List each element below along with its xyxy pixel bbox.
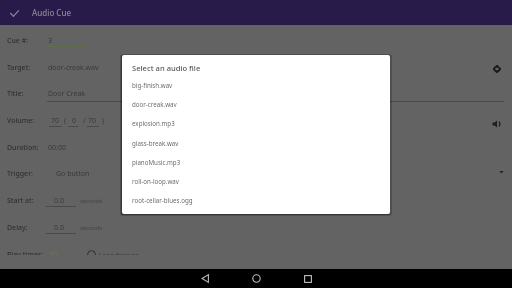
staticText: Play times: [7, 250, 44, 255]
button[interactable]: roll-on-loop.wav [122, 171, 390, 190]
staticText: roll-on-loop.wav [132, 177, 179, 185]
staticText: / [83, 116, 86, 126]
staticText: Audio Cue [32, 7, 72, 18]
staticText: big-finish.wav [132, 81, 173, 89]
staticText: Select an audio file [132, 63, 201, 73]
staticText: pianoMusic.mp3 [132, 158, 181, 166]
staticText: Start at: [7, 196, 34, 206]
staticText: Delay: [7, 223, 28, 233]
button[interactable]: Settings [488, 60, 505, 77]
staticText: Loop forever [99, 251, 138, 255]
staticText: 70 [51, 116, 60, 126]
staticText: 0 [72, 116, 77, 126]
staticText: ) [102, 116, 105, 126]
staticText: glass-break.wav [132, 139, 179, 147]
staticText: Door Creak [48, 89, 86, 99]
staticText: door-creak.wav [132, 100, 177, 108]
staticText: 0.0 [54, 196, 64, 206]
button[interactable]: Back [180, 269, 231, 288]
button[interactable]: Recents [282, 269, 333, 288]
staticText: 0.0 [54, 223, 64, 233]
staticText: Go button [56, 169, 90, 179]
staticText: Trigger: [7, 169, 33, 179]
staticText: Volume: [7, 116, 35, 126]
staticText: 3 [48, 36, 53, 46]
staticText: Title: [7, 89, 24, 99]
staticText: 00:00 [48, 143, 66, 153]
button[interactable]: glass-break.wav [122, 133, 390, 152]
button[interactable]: explosion.mp3 [122, 113, 390, 132]
staticText: seconds [80, 197, 103, 205]
staticText: Cue #: [7, 36, 29, 46]
staticText: Target: [7, 63, 31, 73]
button[interactable]: big-finish.wav [122, 75, 390, 94]
staticText: 70 [88, 116, 97, 126]
button[interactable]: Home [231, 269, 282, 288]
staticText: seconds [80, 224, 103, 232]
button[interactable]: Expand [494, 164, 509, 179]
button[interactable]: pianoMusic.mp3 [122, 152, 390, 171]
staticText: explosion.mp3 [132, 119, 175, 127]
button[interactable]: door-creak.wav [122, 94, 390, 113]
button[interactable]: Play sound [489, 116, 505, 132]
staticText: door-creak.wav [48, 63, 99, 73]
staticText: root-cellar-blues.ogg [132, 196, 193, 204]
button[interactable]: root-cellar-blues.ogg [122, 190, 390, 209]
staticText: ( [64, 116, 67, 126]
button[interactable]: Save [5, 4, 23, 22]
staticText: Duration: [7, 143, 39, 153]
staticText: 20 [49, 250, 58, 255]
